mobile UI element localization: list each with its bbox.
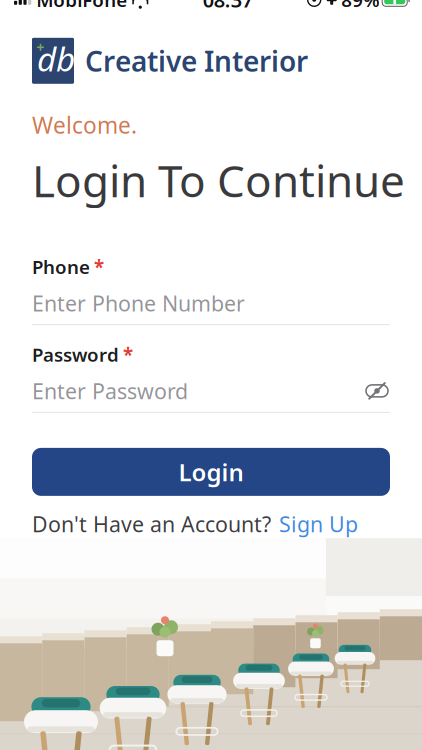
staticText: * bbox=[123, 342, 133, 367]
staticText: Enter Phone Number bbox=[32, 289, 245, 317]
staticText: Welcome. bbox=[32, 110, 137, 140]
staticText: db bbox=[37, 36, 75, 81]
staticText: Login To Continue bbox=[32, 151, 405, 209]
staticText: Phone bbox=[32, 254, 90, 279]
button[interactable]: Login bbox=[32, 448, 390, 496]
staticText: Password bbox=[32, 342, 119, 367]
staticText: * bbox=[94, 254, 104, 279]
staticText: Enter Password bbox=[32, 377, 188, 405]
staticText: Login bbox=[178, 456, 243, 488]
staticText: Sign Up bbox=[279, 510, 358, 538]
staticText: 89% bbox=[341, 0, 379, 12]
staticText: MobiFone bbox=[36, 0, 127, 12]
staticText: Don't Have an Account? bbox=[32, 510, 271, 538]
button[interactable]: Show password bbox=[364, 380, 390, 402]
button[interactable]: Sign Up bbox=[279, 510, 358, 538]
staticText: 08:37 bbox=[203, 0, 253, 13]
staticText: Creative Interior bbox=[85, 42, 308, 79]
